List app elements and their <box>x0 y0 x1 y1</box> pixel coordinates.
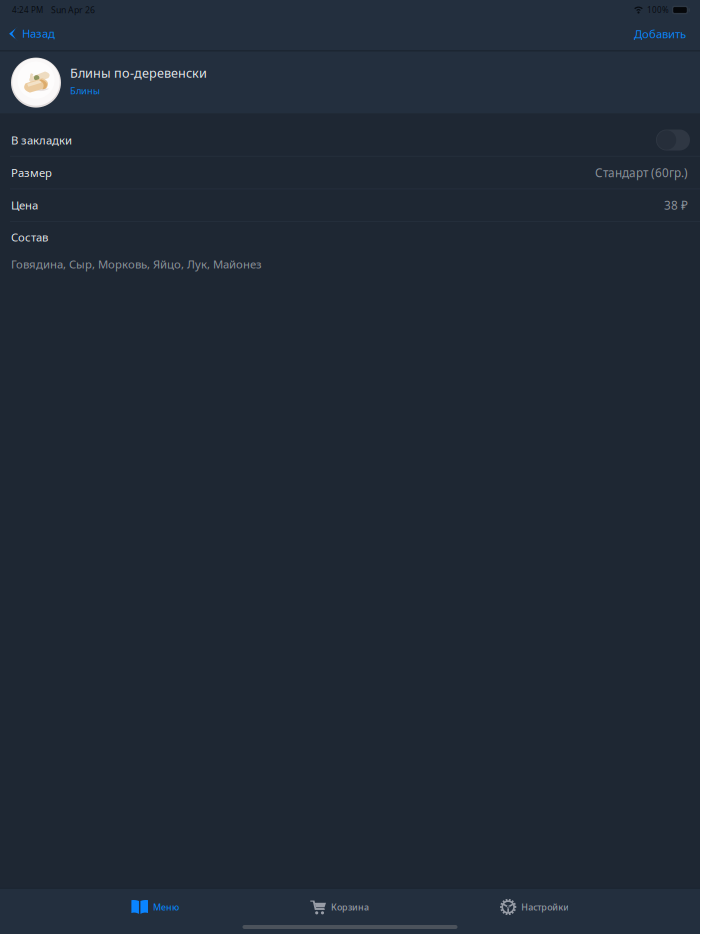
staticText: Добавить <box>634 26 686 41</box>
button[interactable]: Состав <box>0 222 700 252</box>
staticText: В закладки <box>11 132 72 148</box>
staticText: Стандарт (60гр.) <box>595 165 688 181</box>
staticText: Блины <box>70 84 100 97</box>
button[interactable]: Корзина <box>310 889 369 924</box>
staticText: 4:24 PM <box>12 5 43 15</box>
button[interactable]: Меню <box>131 889 179 924</box>
staticText: Назад <box>22 25 55 41</box>
staticText: 38 ₽ <box>664 197 688 213</box>
staticText: Меню <box>153 901 179 913</box>
staticText: Блины по-деревенски <box>70 64 207 81</box>
staticText: Размер <box>11 165 52 180</box>
staticText: Корзина <box>331 901 369 913</box>
staticText: Говядина, Сыр, Морковь, Яйцо, Лук, Майон… <box>11 256 262 272</box>
button[interactable]: Размер <box>0 157 700 188</box>
staticText: 100% <box>647 5 669 15</box>
button[interactable]: Назад <box>0 20 63 50</box>
staticText: Цена <box>11 197 38 213</box>
button[interactable]: Добавить <box>620 20 700 50</box>
staticText: Состав <box>11 229 48 245</box>
staticText: Sun Apr 26 <box>51 4 95 16</box>
staticText: Настройки <box>521 901 569 913</box>
button[interactable]: В закладки <box>0 124 700 156</box>
button[interactable]: Цена <box>0 189 700 221</box>
button[interactable]: Настройки <box>500 889 569 924</box>
